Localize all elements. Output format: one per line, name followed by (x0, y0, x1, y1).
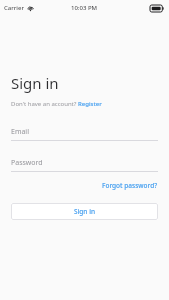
other: Battery full (150, 5, 164, 12)
button[interactable]: Register (78, 100, 102, 108)
staticText: Forgot password? (102, 181, 158, 190)
staticText: 10:03 PM (71, 4, 98, 12)
button[interactable]: Email (11, 125, 158, 141)
button[interactable]: Forgot password? (102, 181, 158, 190)
staticText: Password (11, 158, 43, 168)
staticText: Carrier (4, 4, 24, 12)
staticText: Sign in (11, 73, 59, 93)
staticText: Don't have an account? (11, 100, 78, 108)
staticText: Register (78, 100, 102, 108)
button[interactable]: Password (11, 156, 158, 172)
staticText: Sign in (74, 207, 95, 216)
other: Wi-Fi signal (27, 5, 34, 12)
staticText: Email (11, 127, 29, 137)
button[interactable]: Sign in (11, 203, 158, 220)
